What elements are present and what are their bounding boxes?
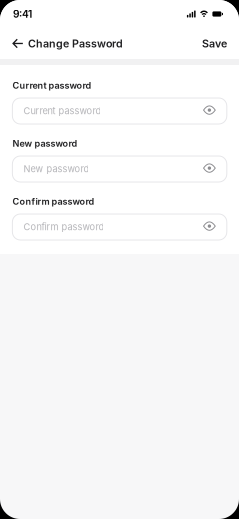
staticText: New password — [12, 138, 77, 149]
staticText: New password — [23, 163, 89, 174]
staticText: Confirm password — [12, 196, 94, 207]
button[interactable]: Save — [202, 37, 227, 50]
staticText: Current password — [23, 105, 101, 116]
staticText: Current password — [12, 80, 91, 91]
staticText: Save — [202, 37, 227, 50]
button[interactable]: New password — [12, 156, 227, 182]
staticText: Confirm password — [23, 221, 104, 232]
staticText: Change Password — [28, 37, 123, 50]
button[interactable]: Current password — [12, 98, 227, 124]
staticText: 9:41 — [13, 8, 32, 20]
button[interactable]: Back — [9, 31, 26, 55]
button[interactable]: Confirm password — [12, 214, 227, 240]
